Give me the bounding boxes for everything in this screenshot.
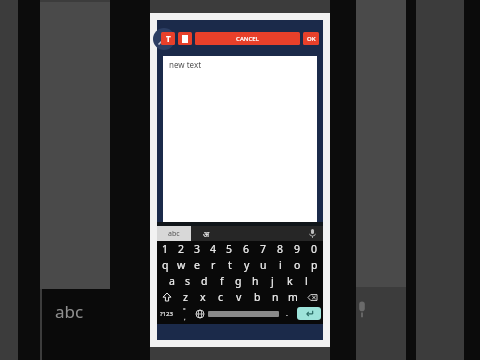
button[interactable]: Change language [192, 305, 208, 322]
button[interactable]: OK [303, 32, 319, 45]
staticText: t [228, 258, 232, 272]
button[interactable]: 1 [157, 241, 173, 257]
staticText: s [185, 274, 191, 288]
staticText: CANCEL [236, 35, 259, 43]
staticText: h [252, 274, 259, 288]
button[interactable]: 5 [221, 241, 238, 257]
staticText: z [183, 290, 188, 304]
button[interactable]: ?123 [157, 305, 176, 322]
button[interactable]: Voice input [301, 226, 323, 241]
staticText: ° [183, 306, 186, 314]
button[interactable]: . [279, 305, 295, 322]
staticText: 6 [243, 242, 250, 256]
staticText: i [279, 258, 282, 272]
staticText: . [286, 309, 288, 319]
staticText: o [294, 258, 301, 272]
staticText: OK [307, 35, 316, 43]
button[interactable]: j [264, 273, 281, 289]
staticText: v [236, 290, 242, 304]
button[interactable]: k [281, 273, 298, 289]
staticText: 2 [178, 242, 185, 256]
button[interactable]: v [230, 289, 248, 305]
staticText: 8 [277, 242, 284, 256]
button[interactable]: Space [208, 309, 279, 318]
button[interactable]: l [298, 273, 315, 289]
button[interactable]: 6 [238, 241, 255, 257]
button[interactable]: o [289, 257, 306, 273]
button[interactable]: t [221, 257, 238, 273]
staticText: abc [55, 300, 84, 323]
button[interactable]: n [266, 289, 284, 305]
button[interactable]: Backspace [302, 289, 323, 305]
staticText: अ [203, 228, 210, 239]
button[interactable]: z [177, 289, 194, 305]
button[interactable]: u [255, 257, 272, 273]
button[interactable]: new text [163, 56, 317, 222]
button[interactable]: d [196, 273, 213, 289]
staticText: c [218, 290, 224, 304]
staticText: T [166, 33, 171, 44]
staticText: j [271, 274, 274, 288]
button[interactable]: p [306, 257, 323, 273]
staticText: abc [168, 229, 180, 239]
button[interactable]: q [157, 257, 173, 273]
button[interactable]: 9 [289, 241, 306, 257]
button[interactable]: a [164, 273, 180, 289]
staticText: p [311, 258, 318, 272]
staticText: 4 [210, 242, 217, 256]
staticText: l [305, 274, 308, 288]
button[interactable]: m [284, 289, 302, 305]
staticText: 9 [294, 242, 301, 256]
button[interactable]: c [212, 289, 230, 305]
button[interactable]: i [272, 257, 289, 273]
button[interactable]: h [247, 273, 264, 289]
button[interactable]: e [189, 257, 205, 273]
staticText: g [235, 274, 242, 288]
button[interactable]: Text format [161, 32, 175, 45]
staticText: n [272, 290, 279, 304]
button[interactable]: s [180, 273, 196, 289]
button[interactable]: 3 [189, 241, 205, 257]
staticText: b [254, 290, 261, 304]
staticText: , [184, 314, 186, 322]
staticText: m [288, 290, 298, 304]
button[interactable]: g [230, 273, 247, 289]
staticText: r [211, 258, 216, 272]
button[interactable]: y [238, 257, 255, 273]
staticText: a [169, 274, 175, 288]
staticText: ?123 [160, 310, 173, 318]
staticText: new text [169, 59, 202, 70]
staticText: w [177, 258, 186, 272]
button[interactable]: r [205, 257, 221, 273]
staticText: u [260, 258, 267, 272]
button[interactable]: 4 [205, 241, 221, 257]
button[interactable]: Color [178, 32, 192, 45]
button[interactable]: abc [157, 226, 191, 241]
staticText: x [200, 290, 206, 304]
button[interactable]: Enter [297, 307, 321, 320]
button[interactable]: 8 [272, 241, 289, 257]
staticText: 7 [260, 242, 267, 256]
button[interactable]: x [194, 289, 212, 305]
button[interactable]: ° [176, 305, 192, 322]
staticText: 1 [162, 242, 169, 256]
staticText: e [194, 258, 200, 272]
staticText: k [287, 274, 293, 288]
button[interactable]: b [248, 289, 266, 305]
button[interactable]: w [173, 257, 189, 273]
staticText: q [162, 258, 169, 272]
button[interactable]: Shift [157, 289, 177, 305]
staticText: 5 [226, 242, 233, 256]
button[interactable]: 2 [173, 241, 189, 257]
staticText: 3 [194, 242, 201, 256]
button[interactable]: f [213, 273, 230, 289]
staticText: y [244, 258, 250, 272]
button[interactable]: अ [191, 226, 301, 241]
staticText: 0 [311, 242, 318, 256]
staticText: f [220, 274, 224, 288]
button[interactable]: CANCEL [195, 32, 300, 45]
button[interactable]: 7 [255, 241, 272, 257]
button[interactable]: 0 [306, 241, 323, 257]
staticText: d [201, 274, 208, 288]
